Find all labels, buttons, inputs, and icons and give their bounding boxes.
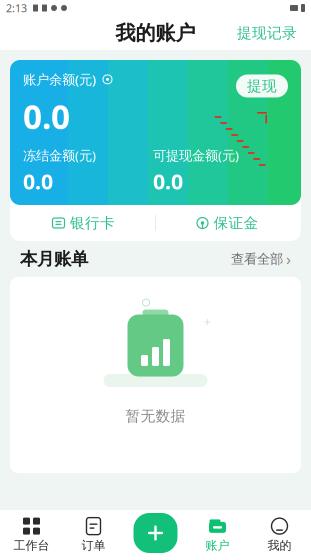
staticText: 保证金	[213, 214, 258, 232]
staticText: 查看全部	[231, 251, 283, 267]
staticText: ›	[286, 248, 291, 270]
button[interactable]: 新建	[133, 513, 177, 553]
button[interactable]: 工作台	[0, 511, 62, 559]
staticText: 我的	[267, 538, 291, 553]
staticText: 我的账户	[115, 21, 195, 45]
button[interactable]: 账户	[186, 511, 248, 559]
staticText: 0.0	[23, 167, 53, 195]
staticText: 本月账单	[20, 248, 88, 270]
button[interactable]: 提现	[236, 74, 288, 97]
staticText: 提现记录	[237, 24, 297, 42]
button[interactable]: 银行卡	[12, 205, 155, 241]
staticText: 订单	[81, 538, 105, 553]
staticText: 账户余额(元)	[23, 70, 96, 88]
button[interactable]: 查看全部	[231, 242, 291, 276]
staticText: 银行卡	[70, 214, 115, 232]
staticText: 0.0	[23, 94, 70, 138]
button[interactable]: 我的	[248, 511, 310, 559]
staticText: 2:13	[6, 1, 27, 15]
staticText: 冻结金额(元)	[23, 146, 96, 164]
staticText: 账户	[205, 538, 229, 553]
staticText: 工作台	[13, 538, 49, 553]
button[interactable]: 提现记录	[227, 18, 307, 48]
staticText: 暂无数据	[125, 407, 185, 425]
staticText: 0.0	[153, 167, 183, 195]
button[interactable]: 保证金	[156, 205, 299, 241]
staticText: 提现	[247, 77, 277, 95]
staticText: 可提现金额(元)	[153, 146, 239, 164]
button[interactable]: 订单	[62, 511, 124, 559]
